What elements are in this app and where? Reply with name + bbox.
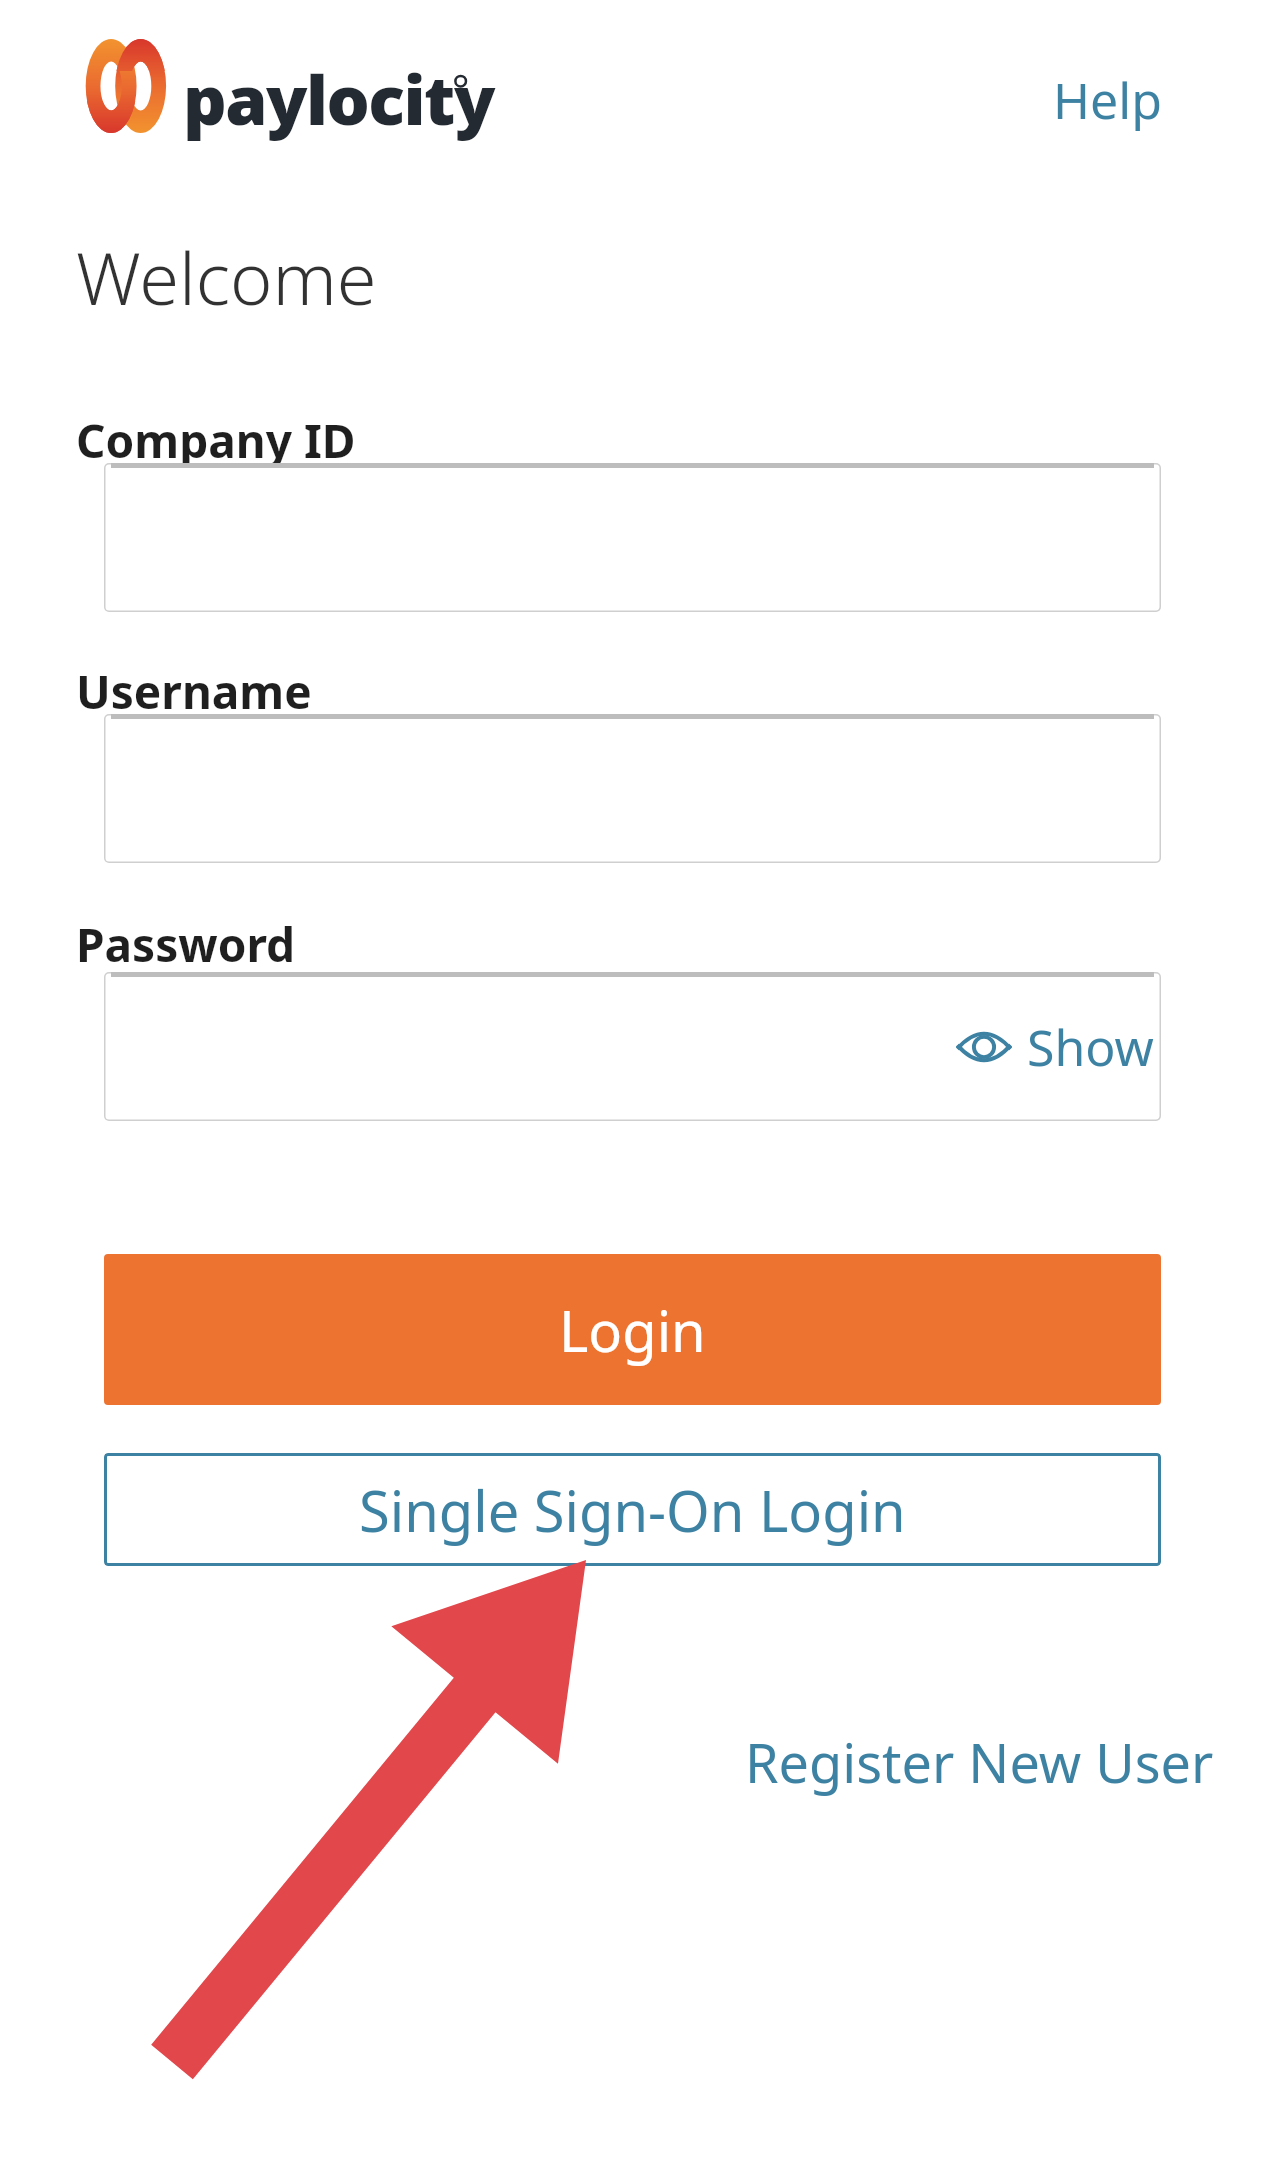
staticText: paylocity [183, 52, 494, 145]
staticText: Show [1027, 1013, 1154, 1081]
button[interactable]: Help [1020, 60, 1195, 140]
other: Show password [955, 1024, 1013, 1070]
button[interactable]: Register New User [745, 1712, 1255, 1812]
button[interactable] [104, 463, 1161, 612]
button[interactable] [104, 972, 1161, 1121]
staticText: Single Sign-On Login [359, 1472, 906, 1548]
other: Paylocity [75, 38, 465, 134]
staticText: Password [76, 913, 296, 976]
staticText: Welcome [76, 228, 377, 326]
staticText: Login [559, 1292, 706, 1368]
staticText: Register New User [745, 1725, 1214, 1799]
button[interactable]: Login [104, 1254, 1161, 1405]
staticText: Company ID [76, 409, 356, 472]
button[interactable] [104, 714, 1161, 863]
button[interactable]: Single Sign-On Login [104, 1453, 1161, 1566]
staticText: Username [76, 660, 312, 723]
staticText: Help [1053, 66, 1162, 134]
button[interactable]: Show password [955, 1002, 1154, 1092]
